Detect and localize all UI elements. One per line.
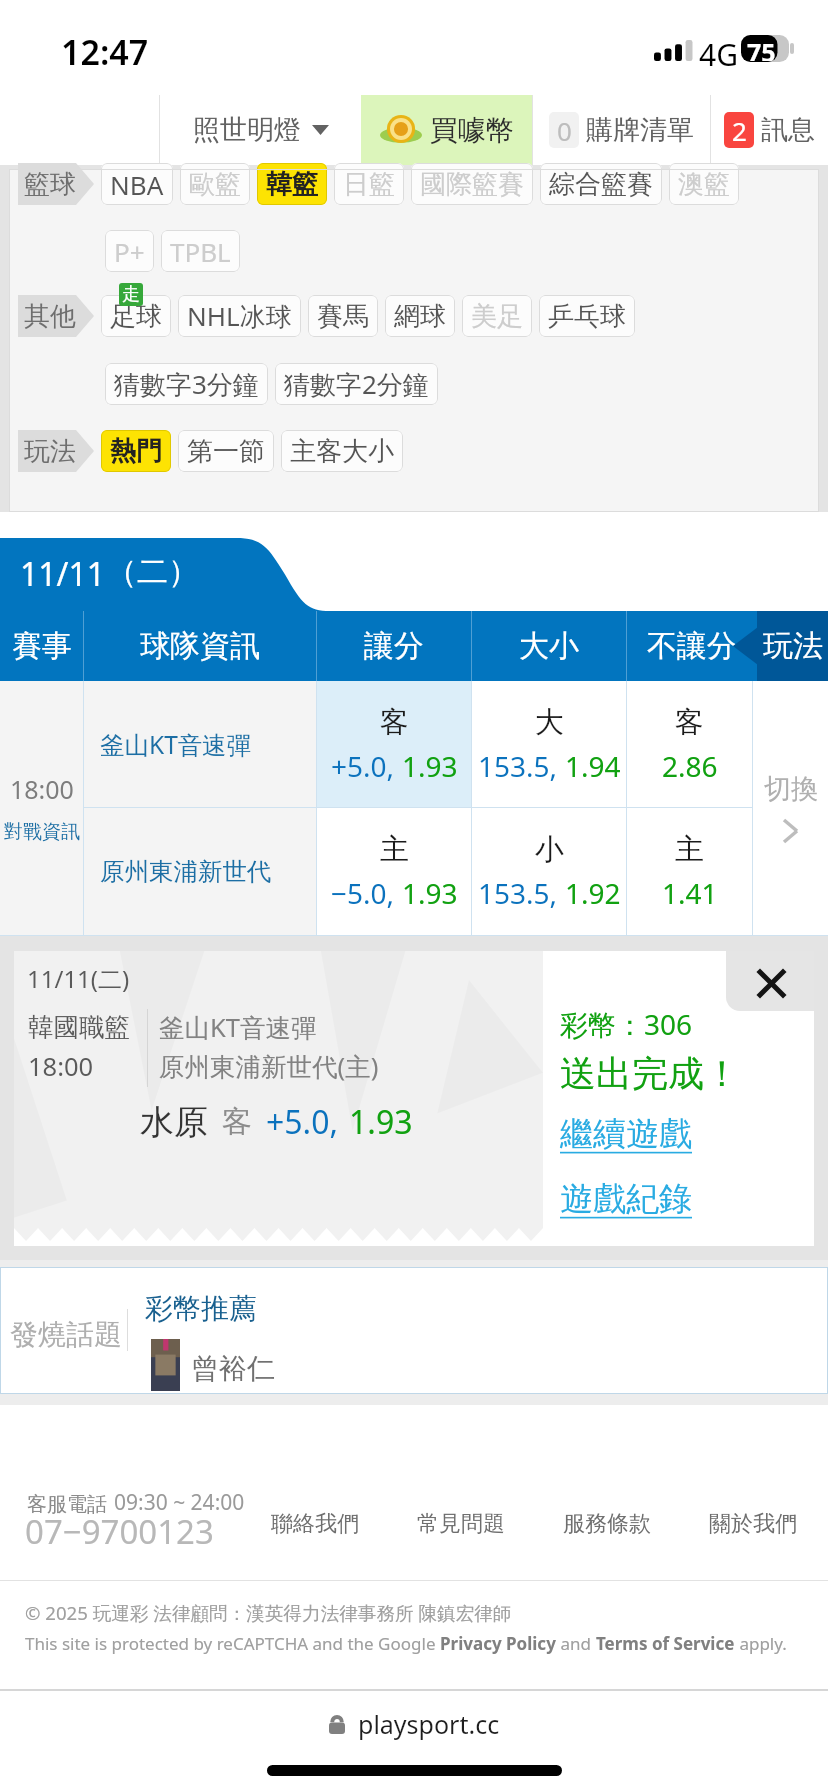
staticText: 釜山KT音速彈: [159, 1010, 317, 1045]
staticText: NBA: [110, 167, 164, 202]
button[interactable]: 大小: [472, 611, 626, 681]
button[interactable]: 切換: [753, 681, 828, 935]
button[interactable]: 日籃: [334, 163, 404, 205]
staticText: 153.5,: [478, 747, 558, 785]
button[interactable]: P+: [105, 230, 154, 272]
button[interactable]: 小: [472, 808, 626, 935]
staticText: 猜數字2分鐘: [284, 366, 429, 402]
staticText: This site is protected by reCAPTCHA and …: [25, 1632, 440, 1655]
button[interactable]: 猜數字3分鐘: [105, 363, 268, 405]
staticText: P+: [114, 234, 145, 269]
staticText: 常見問題: [417, 1510, 505, 1538]
staticText: NHL冰球: [187, 298, 292, 334]
staticText: 原州東浦新世代(主): [159, 1049, 379, 1084]
button[interactable]: playsport.cc: [329, 1707, 500, 1741]
button[interactable]: 客: [317, 681, 471, 807]
button[interactable]: 網球: [385, 295, 455, 337]
staticText: 07−9700123: [25, 1509, 214, 1554]
button[interactable]: 對戰資訊: [4, 820, 80, 844]
staticText: 賽馬: [317, 300, 369, 333]
staticText: 原州東浦新世代: [100, 856, 272, 887]
button[interactable]: 讓分: [317, 611, 471, 681]
staticText: 聯絡我們: [271, 1510, 359, 1538]
button[interactable]: 釜山KT音速彈: [84, 681, 316, 807]
button[interactable]: 遊戲紀錄: [560, 1178, 692, 1220]
staticText: 球隊資訊: [140, 627, 260, 665]
staticText: 彩幣推薦: [145, 1291, 257, 1326]
staticText: +5.0,: [331, 747, 395, 785]
button[interactable]: 主客大小: [281, 430, 403, 472]
button[interactable]: 2: [711, 95, 828, 165]
staticText: 籃球: [24, 168, 76, 201]
button[interactable]: 0: [533, 95, 710, 165]
staticText: 客: [380, 704, 409, 741]
button[interactable]: 國際籃賽: [411, 163, 533, 205]
button[interactable]: NHL冰球: [178, 295, 301, 337]
staticText: 不讓分: [647, 627, 737, 665]
staticText: 小: [535, 831, 564, 868]
button[interactable]: 玩法: [757, 611, 828, 681]
button[interactable]: 熱門: [101, 430, 171, 472]
button[interactable]: 常見問題: [417, 1510, 505, 1538]
button[interactable]: 買噱幣: [361, 95, 532, 165]
button[interactable]: 主: [627, 808, 752, 935]
button[interactable]: 關於我們: [709, 1510, 797, 1538]
button[interactable]: 繼續遊戲: [560, 1113, 692, 1155]
staticText: 1.41: [662, 874, 718, 912]
button[interactable]: NBA: [101, 163, 173, 205]
button[interactable]: 第一節: [178, 430, 274, 472]
staticText: 訊息: [761, 113, 815, 147]
button[interactable]: 彩幣推薦: [145, 1291, 257, 1326]
staticText: 主: [675, 831, 704, 868]
button[interactable]: 韓籃: [257, 163, 327, 205]
button[interactable]: 球隊資訊: [84, 611, 316, 681]
staticText: 第一節: [187, 435, 265, 468]
button[interactable]: 猜數字2分鐘: [275, 363, 438, 405]
button[interactable]: 乒乓球: [539, 295, 635, 337]
staticText: （二）: [106, 552, 199, 591]
staticText: 主客大小: [290, 435, 394, 468]
staticText: 乒乓球: [548, 300, 626, 333]
button[interactable]: TPBL: [161, 230, 240, 272]
button[interactable]: 原州東浦新世代: [84, 808, 316, 935]
button[interactable]: 客: [627, 681, 752, 807]
staticText: 18:00: [10, 772, 74, 806]
staticText: 韓籃: [266, 168, 318, 201]
button[interactable]: 綜合籃賽: [540, 163, 662, 205]
staticText: Privacy Policy: [440, 1632, 556, 1655]
button[interactable]: 大: [472, 681, 626, 807]
button[interactable]: 澳籃: [669, 163, 739, 205]
button[interactable]: 不讓分: [627, 611, 757, 681]
staticText: 11/11(二): [27, 962, 130, 995]
button[interactable]: 賽事: [0, 611, 83, 681]
staticText: 0: [557, 113, 572, 148]
staticText: 水原: [140, 1101, 208, 1144]
staticText: 發燒話題: [10, 1317, 122, 1352]
staticText: 大小: [519, 627, 579, 665]
button[interactable]: 主: [317, 808, 471, 935]
staticText: © 2025 玩運彩 法律顧問：漢英得力法律事務所 陳鎮宏律師: [25, 1600, 512, 1625]
button[interactable]: 照世明燈: [160, 95, 361, 165]
staticText: apply.: [735, 1632, 787, 1655]
staticText: 彩幣：306: [560, 1005, 693, 1043]
button[interactable]: 歐籃: [180, 163, 250, 205]
button[interactable]: 聯絡我們: [271, 1510, 359, 1538]
staticText: 歐籃: [189, 168, 241, 201]
button[interactable]: 足球: [101, 295, 171, 337]
staticText: 足球: [110, 300, 162, 333]
staticText: 18:00: [28, 1049, 94, 1084]
button[interactable]: 賽馬: [308, 295, 378, 337]
staticText: 1.93: [402, 747, 458, 785]
button[interactable]: 服務條款: [563, 1510, 651, 1538]
staticText: 購牌清單: [586, 113, 694, 147]
staticText: 11/11: [20, 552, 106, 596]
button[interactable]: 美足: [462, 295, 532, 337]
staticText: and: [556, 1632, 596, 1655]
staticText: 1.94: [565, 747, 621, 785]
staticText: 切換: [764, 772, 818, 806]
button[interactable]: Close: [726, 951, 814, 1011]
staticText: 澳籃: [678, 168, 730, 201]
staticText: 4G: [699, 34, 738, 75]
staticText: 韓國職籃: [28, 1011, 130, 1043]
staticText: 繼續遊戲: [560, 1113, 692, 1155]
